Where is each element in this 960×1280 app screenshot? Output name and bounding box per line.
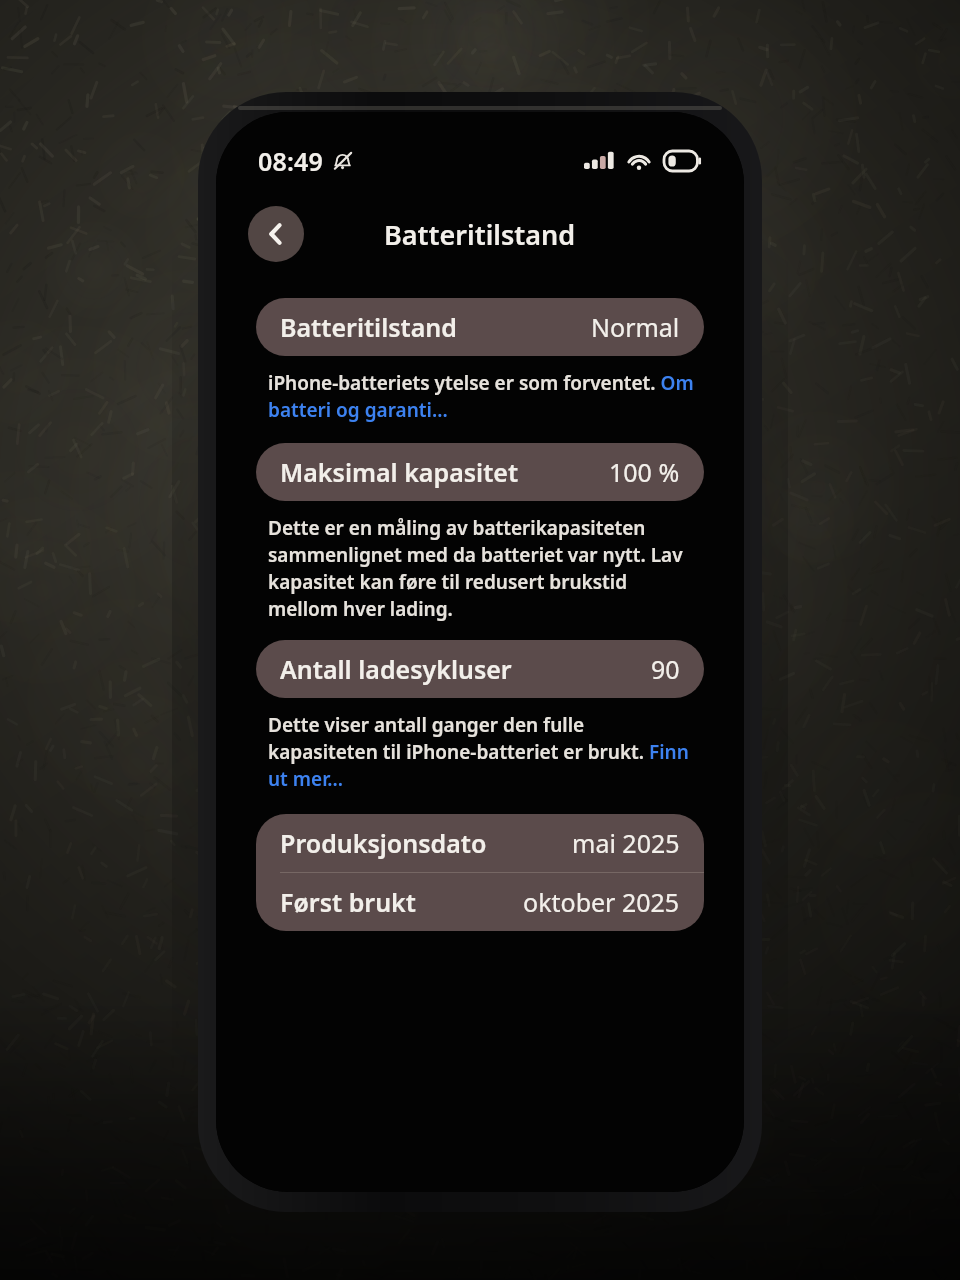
staticText: iPhone-batteriets ytelse er som forvente… [268,370,698,423]
staticText: Antall ladesykluser [280,652,512,686]
button[interactable]: Produksjonsdato [256,814,704,931]
button[interactable]: Maksimal kapasitet [256,443,704,501]
staticText: Batteritilstand [384,216,576,253]
staticText: 08:49 [258,144,324,178]
staticText: Batteritilstand [280,310,457,344]
staticText: 90 [651,652,680,686]
staticText: Maksimal kapasitet [280,455,519,489]
staticText: Dette viser antall ganger den fulle kapa… [268,712,698,792]
button[interactable]: Batteritilstand [256,298,704,356]
button[interactable]: Tilbake [248,206,304,262]
staticText: 100 % [609,455,680,489]
staticText: Først brukt [280,885,416,919]
staticText: Produksjonsdato [280,826,487,860]
button[interactable]: Antall ladesykluser [256,640,704,698]
staticText: oktober 2025 [523,885,680,919]
staticText: Normal [591,310,680,344]
staticText: mai 2025 [572,826,680,860]
staticText: Dette er en måling av batterikapasiteten… [268,515,698,622]
